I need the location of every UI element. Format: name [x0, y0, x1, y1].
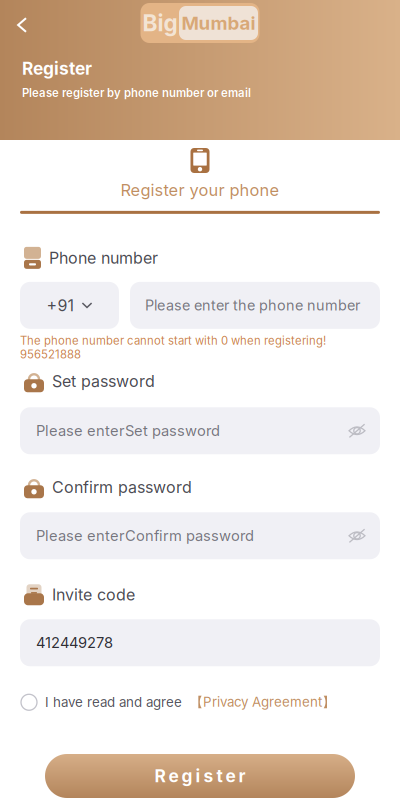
staticText: R e g i s t e r: [154, 765, 245, 786]
button[interactable]: +91: [20, 282, 119, 329]
staticText: Confirm password: [52, 478, 192, 497]
staticText: Please enter the phone number: [145, 297, 360, 314]
staticText: +91: [46, 296, 74, 315]
button[interactable]: I have read and agree: [0, 688, 400, 716]
staticText: Register your phone: [120, 180, 279, 200]
staticText: Set password: [52, 372, 155, 391]
staticText: The phone number cannot start with 0 whe…: [20, 334, 326, 347]
staticText: Big: [142, 9, 177, 37]
staticText: Please enterConfirm password: [36, 527, 254, 545]
button[interactable]: Register your phone: [0, 140, 400, 211]
staticText: 【Privacy Agreement】: [190, 694, 335, 711]
staticText: Please register by phone number or email: [22, 86, 251, 100]
staticText: Register: [22, 58, 92, 79]
staticText: Invite code: [52, 585, 135, 604]
staticText: Mumbai: [181, 12, 255, 34]
button[interactable]: R e g i s t e r: [45, 754, 355, 798]
staticText: Please enterSet password: [36, 422, 220, 440]
staticText: I have read and agree: [45, 694, 182, 710]
staticText: 412449278: [36, 634, 113, 652]
staticText: 956521888: [20, 348, 81, 361]
staticText: Phone number: [49, 248, 158, 268]
button[interactable]: Back: [5, 8, 39, 42]
